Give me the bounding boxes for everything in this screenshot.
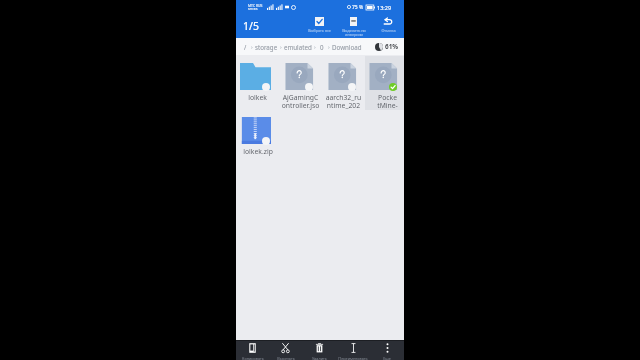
staticText: › <box>251 43 253 51</box>
staticText: 75 % <box>352 4 364 11</box>
staticText: / <box>244 43 247 51</box>
staticText: aarch32_runtime_202 <box>324 93 363 110</box>
staticText: Выделить по инверсии <box>342 28 366 38</box>
staticText: › <box>314 43 316 51</box>
staticText: 0 <box>320 43 324 51</box>
other: Copy <box>248 343 257 353</box>
staticText: 13:29 <box>377 4 392 11</box>
button[interactable]: Rename <box>336 341 370 360</box>
staticText: Копировать <box>242 356 264 360</box>
staticText: 1/5 <box>243 19 259 33</box>
button[interactable]: Delete <box>302 341 336 360</box>
other: More options <box>383 343 392 353</box>
staticText: emulated <box>284 43 312 51</box>
staticText: Переименовать <box>338 356 368 360</box>
staticText: AjGamingController.jso <box>281 93 320 110</box>
staticText: Выбрать все <box>308 28 331 33</box>
other: Rename <box>349 343 358 353</box>
button[interactable]: lolkek.zip <box>236 110 279 164</box>
staticText: › <box>328 43 330 51</box>
staticText: Удалить <box>312 356 327 360</box>
button[interactable]: aarch32_runtime_202 <box>322 56 365 110</box>
staticText: lolkek.zip <box>243 147 273 156</box>
button[interactable]: AjGamingController.jso <box>279 56 322 110</box>
staticText: PocketMine-MP <box>377 93 398 110</box>
button[interactable]: PocketMine-MP <box>365 56 404 110</box>
staticText: 61% <box>385 42 399 51</box>
staticText: storage <box>255 43 278 51</box>
staticText: Download <box>332 43 362 51</box>
button[interactable]: Copy <box>236 341 269 360</box>
other: Delete <box>315 343 324 353</box>
staticText: lolkek <box>248 93 267 102</box>
other: Cut <box>281 343 290 353</box>
button[interactable]: More options <box>370 341 404 360</box>
button[interactable]: Cut <box>269 341 302 360</box>
button[interactable]: Отмена <box>371 14 405 38</box>
button[interactable]: Выбрать все <box>303 14 336 38</box>
button[interactable]: lolkek <box>236 56 279 110</box>
staticText: › <box>280 43 282 51</box>
staticText: Еще <box>383 356 391 360</box>
staticText: Отмена <box>381 28 396 33</box>
staticText: МТС RUS мтсвк <box>248 3 263 11</box>
staticText: Вырезать <box>277 356 295 360</box>
button[interactable]: Выделить по инверсии <box>336 14 371 38</box>
